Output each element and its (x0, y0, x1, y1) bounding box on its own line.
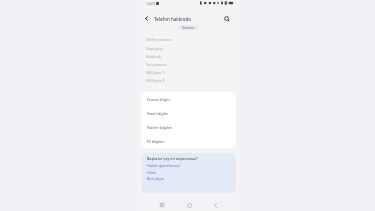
button[interactable]: Search (221, 13, 232, 24)
staticText: 14:25 (146, 1, 155, 6)
staticText: Pil bilgileri (147, 139, 165, 144)
button[interactable]: Recent apps (156, 199, 168, 211)
staticText: Telefon hakkında (154, 16, 191, 22)
staticText: IMEI (yuva 2) (146, 79, 166, 83)
staticText: Bize ulaşın (147, 176, 164, 181)
button[interactable]: Pil bilgileri (141, 134, 236, 148)
button[interactable]: Back (141, 13, 152, 24)
button[interactable]: Sıfırla (147, 170, 156, 175)
button[interactable]: Düzenle (178, 25, 199, 30)
staticText: Başka bir şey mi arıyorsunuz? (147, 156, 198, 161)
staticText: Sinyal gücü (146, 47, 164, 51)
button[interactable]: Yazılım bilgileri (141, 120, 236, 134)
button[interactable]: Durum bilgisi (141, 92, 236, 106)
button[interactable]: Yasal bilgiler (141, 106, 236, 120)
button[interactable]: Home (183, 199, 195, 211)
staticText: Model adı (146, 55, 161, 59)
staticText: Yazılım bilgileri (147, 125, 173, 130)
staticText: IMEI (yuva 1) (146, 71, 166, 75)
button[interactable]: Back (209, 199, 221, 211)
staticText: Yasal bilgiler (147, 111, 169, 116)
staticText: Sıfırla (147, 170, 156, 175)
button[interactable]: Bize ulaşın (147, 176, 164, 181)
staticText: Yazılım güncellemesi (147, 163, 180, 168)
staticText: Düzenle (182, 26, 195, 30)
staticText: Seri numarası (146, 63, 167, 67)
button[interactable]: Yazılım güncellemesi (147, 163, 180, 168)
staticText: Telefon numarası (146, 38, 172, 42)
staticText: Durum bilgisi (147, 97, 170, 102)
